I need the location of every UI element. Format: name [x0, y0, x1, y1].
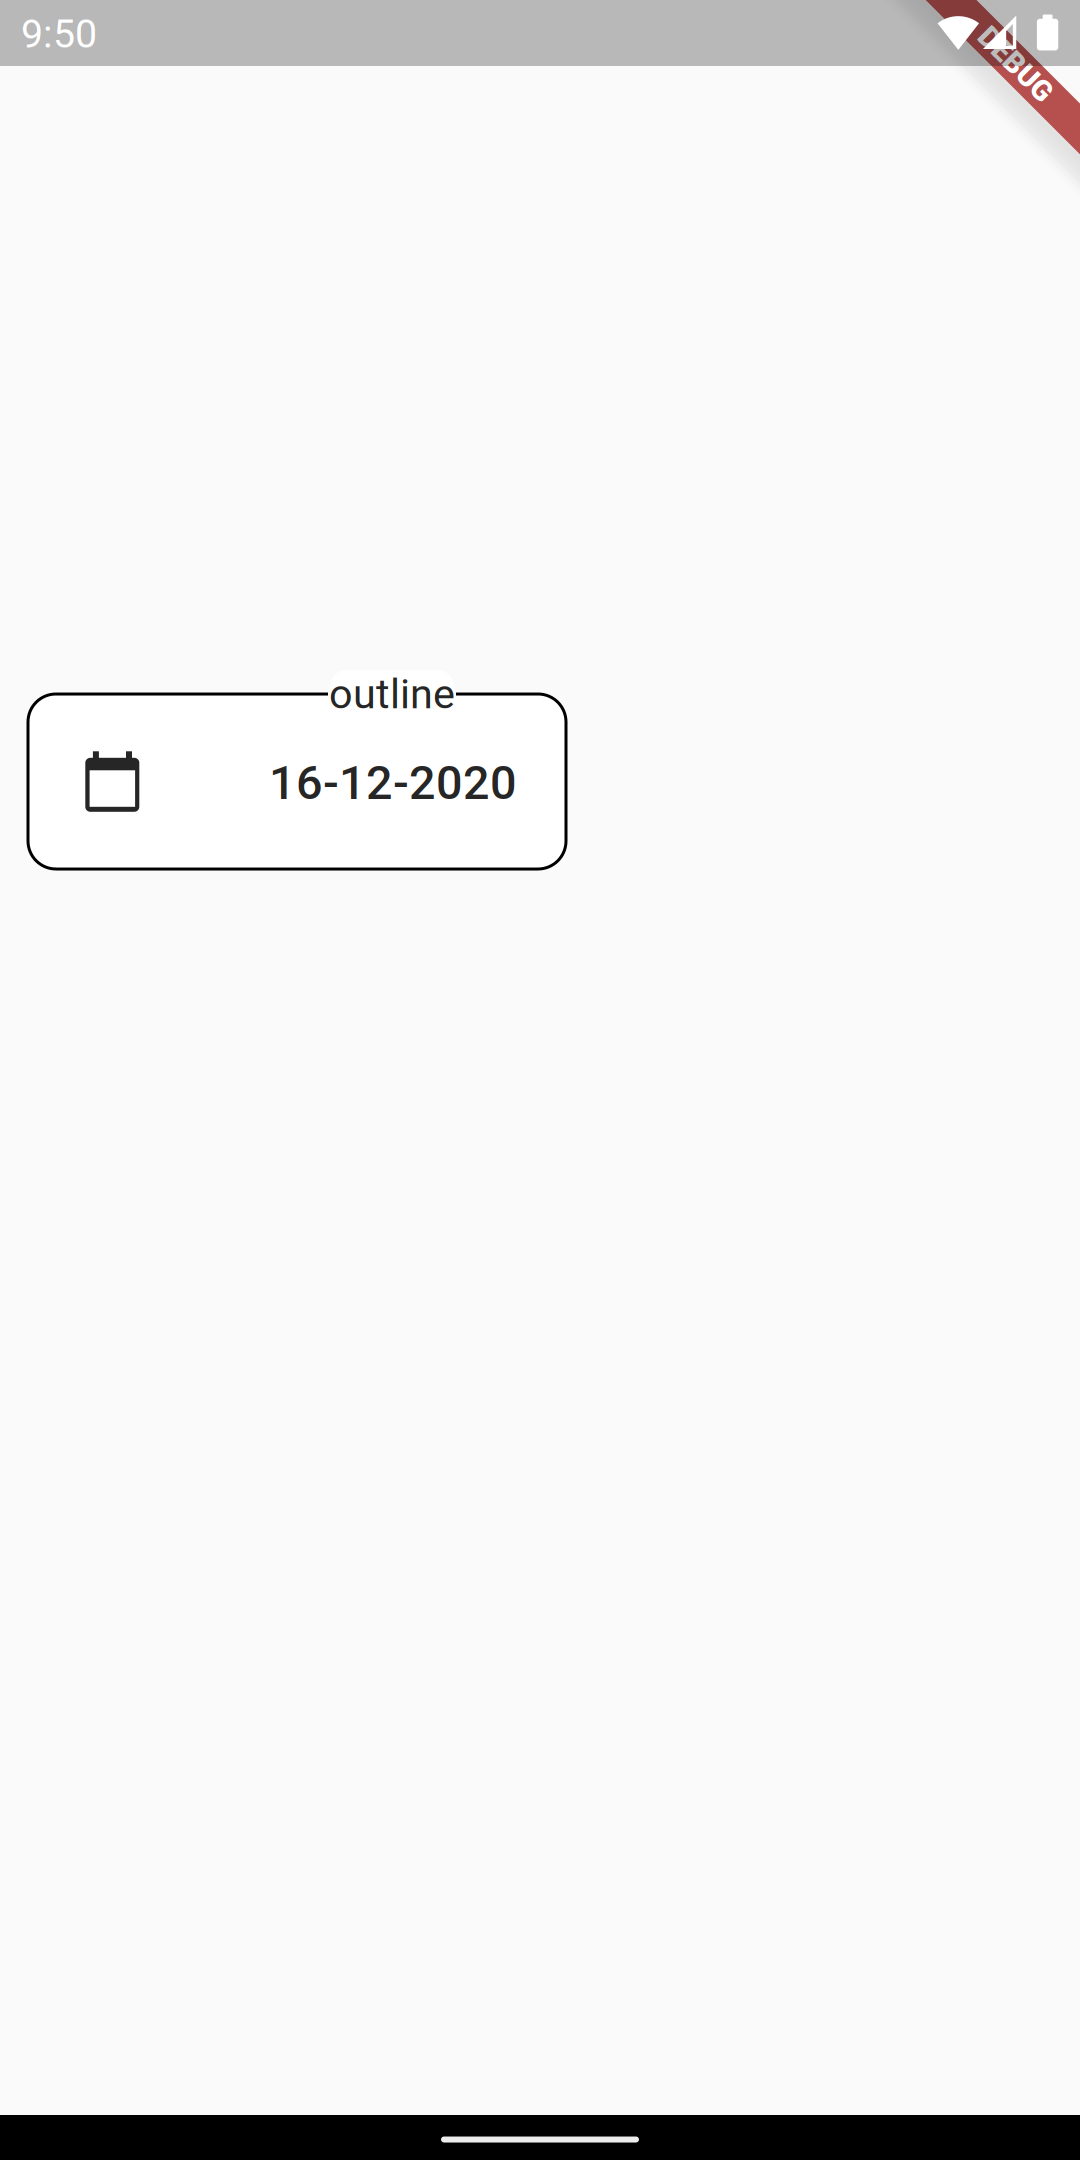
- button[interactable]: outline: [28, 669, 566, 869]
- staticText: outline: [329, 670, 455, 718]
- staticText: 16-12-2020: [269, 756, 517, 810]
- staticText: 9:50: [21, 11, 97, 57]
- staticText: DEBUG: [969, 48, 1062, 81]
